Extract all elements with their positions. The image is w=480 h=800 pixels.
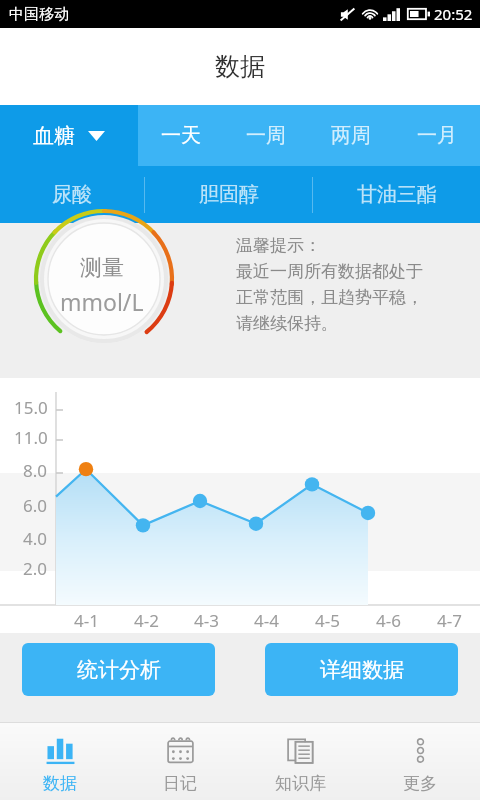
button[interactable]: 统计分析	[22, 643, 215, 696]
staticText: 胆固醇	[199, 182, 259, 207]
staticText: 测量	[80, 254, 124, 282]
staticText: 4-3	[194, 609, 219, 632]
staticText: 数据	[215, 51, 265, 82]
staticText: 4-4	[254, 609, 279, 632]
staticText: 2.0	[23, 557, 48, 580]
staticText: 统计分析	[77, 657, 161, 683]
button[interactable]: 一天	[138, 105, 223, 166]
staticText: 两周	[331, 123, 371, 148]
staticText: 4-6	[376, 609, 401, 632]
staticText: 正常范围，且趋势平稳，	[236, 287, 423, 308]
staticText: 11.0	[14, 426, 48, 449]
other: 知识库	[285, 735, 316, 766]
staticText: 数据	[43, 773, 77, 794]
button[interactable]: 一月	[394, 105, 480, 166]
button[interactable]: 日记	[120, 723, 240, 800]
button[interactable]: 甘油三酯	[313, 166, 480, 223]
staticText: 一天	[161, 123, 201, 148]
staticText: 4-2	[134, 609, 159, 632]
staticText: 请继续保持。	[236, 313, 338, 334]
staticText: 4-1	[74, 609, 99, 632]
staticText: 血糖	[33, 123, 75, 149]
staticText: 一月	[417, 123, 457, 148]
button[interactable]: 数据	[0, 723, 120, 800]
other: 日记	[165, 735, 196, 766]
staticText: mmol/L	[60, 286, 144, 317]
button[interactable]: 知识库	[240, 723, 360, 800]
staticText: 详细数据	[320, 657, 404, 683]
staticText: 一周	[246, 123, 286, 148]
staticText: 4-7	[437, 609, 462, 632]
button[interactable]: 血糖	[0, 105, 138, 166]
staticText: 中国移动	[9, 5, 69, 24]
staticText: 8.0	[23, 459, 48, 482]
button[interactable]: 两周	[308, 105, 394, 166]
staticText: 15.0	[14, 396, 48, 419]
button[interactable]: 尿酸	[0, 166, 144, 223]
staticText: 6.0	[23, 494, 48, 517]
staticText: 知识库	[275, 773, 326, 794]
staticText: 更多	[403, 773, 437, 794]
staticText: 4-5	[315, 609, 340, 632]
other: 数据	[45, 735, 76, 766]
other: 更多	[405, 735, 436, 766]
staticText: 日记	[163, 773, 197, 794]
staticText: 甘油三酯	[357, 182, 437, 207]
button[interactable]: 一周	[223, 105, 308, 166]
staticText: 温馨提示：	[236, 235, 321, 256]
staticText: 尿酸	[52, 182, 92, 207]
staticText: 最近一周所有数据都处于	[236, 261, 423, 282]
staticText: 4.0	[23, 527, 48, 550]
button[interactable]: 详细数据	[265, 643, 458, 696]
staticText: 20:52	[434, 4, 473, 24]
button[interactable]: 更多	[360, 723, 480, 800]
button[interactable]: 胆固醇	[145, 166, 312, 223]
